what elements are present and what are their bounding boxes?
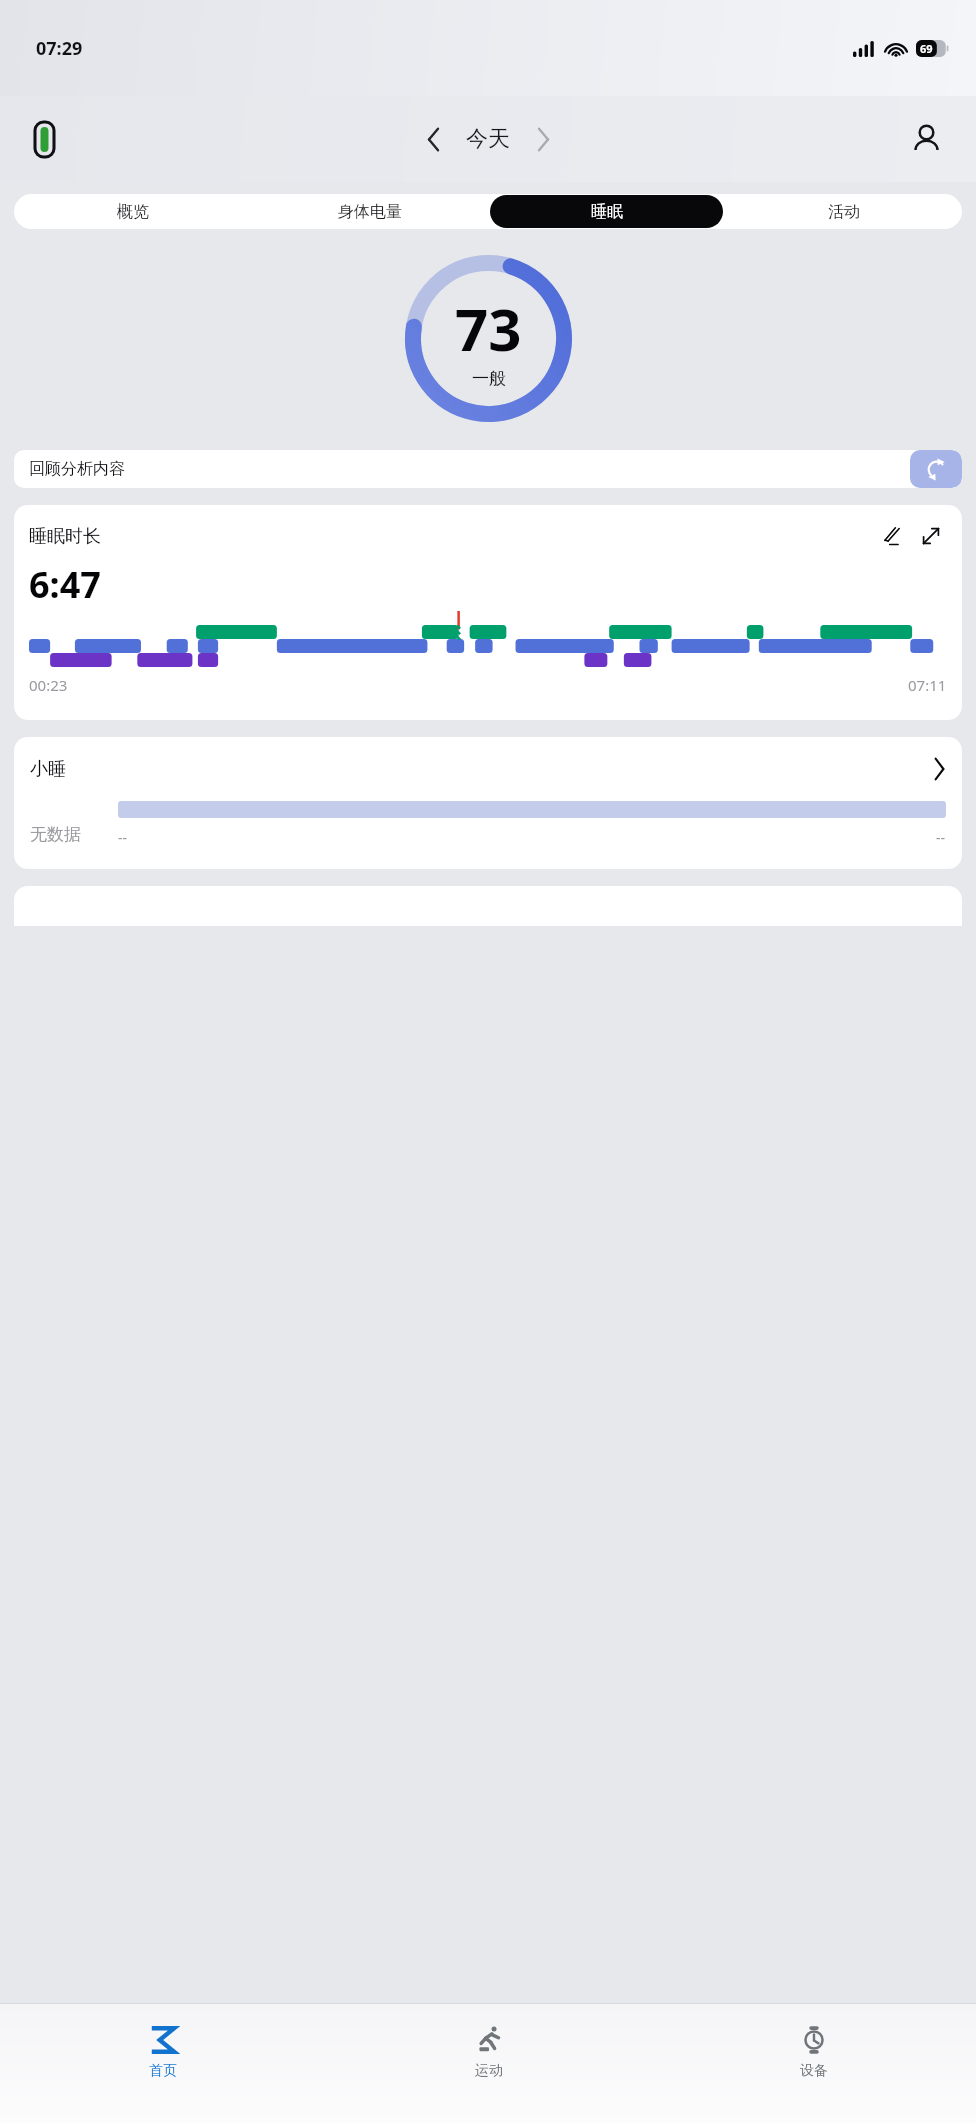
button[interactable]: 小睡: [14, 737, 962, 869]
button[interactable]: 身体电量: [253, 195, 486, 228]
button[interactable]: 运动: [326, 2022, 651, 2084]
button[interactable]: 设备: [651, 2022, 976, 2084]
staticText: 运动: [475, 2062, 503, 2080]
button[interactable]: 首页: [0, 2022, 326, 2084]
button[interactable]: 活动: [727, 195, 960, 228]
staticText: 无数据: [30, 824, 81, 845]
button[interactable]: Profile: [902, 115, 950, 163]
staticText: 6:47: [29, 560, 101, 609]
button[interactable]: Watch battery: [22, 117, 66, 161]
button[interactable]: Expand chart: [915, 520, 947, 552]
button[interactable]: 睡眠: [490, 195, 723, 228]
staticText: 睡眠: [591, 202, 623, 222]
staticText: 69: [920, 41, 933, 56]
staticText: --: [936, 828, 946, 847]
staticText: 00:23: [29, 675, 68, 695]
staticText: 小睡: [30, 758, 933, 781]
staticText: 活动: [828, 202, 860, 222]
button[interactable]: Edit sleep: [877, 520, 909, 552]
staticText: 概览: [117, 202, 149, 222]
button[interactable]: 回顾分析内容: [14, 450, 962, 488]
staticText: 今天: [466, 125, 510, 153]
button[interactable]: Previous day: [412, 118, 454, 160]
staticText: 07:29: [36, 36, 83, 61]
button[interactable]: 睡眠时长: [14, 505, 962, 720]
button[interactable]: 概览: [16, 195, 249, 228]
button[interactable]: Next day: [522, 118, 564, 160]
staticText: 睡眠时长: [29, 525, 877, 548]
staticText: 设备: [800, 2062, 828, 2080]
staticText: 07:11: [908, 675, 947, 695]
staticText: 首页: [149, 2062, 177, 2080]
button[interactable]: Refresh analysis: [910, 450, 962, 488]
staticText: 一般: [472, 368, 506, 389]
staticText: 身体电量: [338, 202, 402, 222]
staticText: 73: [455, 289, 522, 368]
staticText: --: [118, 828, 128, 847]
staticText: 回顾分析内容: [29, 459, 910, 479]
